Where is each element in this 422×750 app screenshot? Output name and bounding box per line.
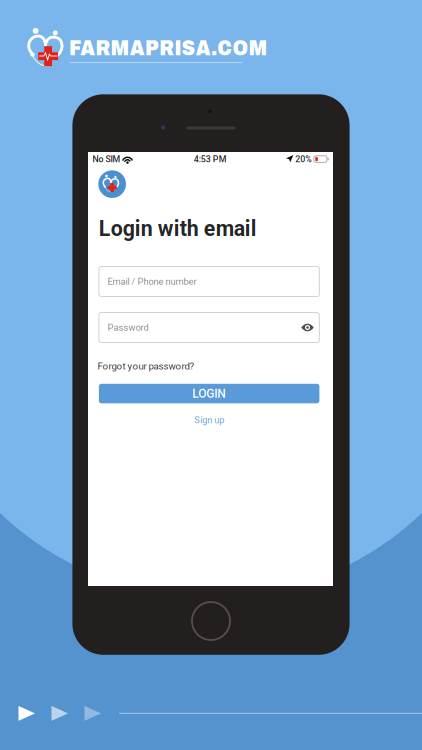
staticText: 4:53 PM — [194, 154, 227, 164]
staticText: No SIM — [92, 154, 120, 164]
button[interactable]: Forgot your password? — [97, 360, 194, 372]
button[interactable]: LOGIN — [99, 384, 319, 403]
button[interactable]: Sign up — [99, 414, 319, 426]
staticText: FARMAPRISA.COM — [69, 36, 268, 60]
staticText: Login with email — [99, 216, 257, 241]
staticText: LOGIN — [192, 386, 226, 401]
staticText: 20% — [295, 154, 311, 164]
staticText: Email / Phone number — [107, 276, 196, 287]
staticText: Password — [107, 322, 148, 333]
staticText: Sign up — [194, 414, 224, 425]
staticText: Forgot your password? — [97, 360, 194, 372]
